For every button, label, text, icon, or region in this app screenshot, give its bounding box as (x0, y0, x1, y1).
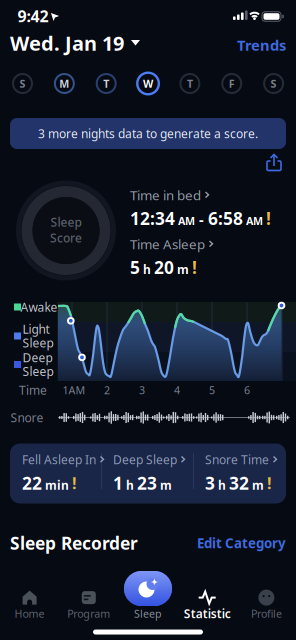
staticText: Sleep Recorder (10, 531, 138, 554)
staticText: Sleep (50, 214, 81, 230)
button[interactable]: Home (2, 574, 58, 626)
staticText: Sleep (22, 335, 53, 351)
staticText: 3 more nights data to generate a score. (38, 125, 258, 141)
button[interactable]: Edit Category (10, 534, 286, 552)
staticText: ! (72, 472, 77, 493)
staticText: Home (15, 606, 45, 621)
button[interactable]: Time in bed (130, 186, 290, 230)
staticText: Deep Sleep (113, 451, 177, 467)
staticText: ! (266, 207, 271, 230)
staticText: Sleep (134, 606, 162, 621)
button[interactable]: Deep Sleep (113, 451, 197, 494)
staticText: 3 (139, 383, 145, 397)
staticText: Time in bed (130, 186, 201, 204)
staticText: 6 (244, 383, 250, 397)
staticText: Program (67, 606, 110, 621)
button[interactable]: Trends (10, 35, 286, 55)
button[interactable]: Statistic (179, 574, 235, 626)
button[interactable]: Snore Time (205, 451, 289, 494)
button[interactable]: Wednesday (135, 70, 161, 96)
staticText: 5 (209, 383, 215, 397)
button[interactable]: Wed. Jan 19 (10, 30, 286, 56)
staticText: 2 (104, 383, 110, 397)
staticText: S (271, 76, 277, 91)
staticText: Time Asleep (130, 235, 205, 253)
staticText: S (19, 76, 25, 91)
staticText: F (229, 76, 235, 91)
button[interactable]: Monday (51, 70, 77, 96)
staticText: T (103, 76, 109, 91)
button[interactable]: Sleep (120, 574, 176, 626)
button[interactable]: Saturday (261, 70, 287, 96)
staticText: 22 min (22, 471, 69, 494)
staticText: W (143, 76, 153, 91)
button[interactable]: Tuesday (93, 70, 119, 96)
button[interactable]: Thursday (177, 70, 203, 96)
staticText: Profile (251, 606, 282, 621)
staticText: ! (192, 256, 197, 279)
staticText: Snore Time (205, 451, 269, 467)
staticText: Sleep (22, 363, 53, 379)
staticText: Score (50, 230, 82, 246)
staticText: 1AM (62, 383, 85, 397)
staticText: T (187, 76, 193, 91)
staticText: Snore (10, 409, 43, 425)
staticText: 9:42 (17, 5, 48, 27)
staticText: Statistic (184, 605, 231, 621)
button[interactable]: Friday (219, 70, 245, 96)
staticText: 4 (174, 383, 180, 397)
staticText: Fell Asleep In (22, 451, 96, 467)
staticText: Light (22, 321, 49, 337)
button[interactable]: Program (61, 574, 117, 626)
staticText: Edit Category (197, 534, 286, 552)
button[interactable]: Share (260, 154, 288, 176)
staticText: 5 h 20 m (130, 256, 189, 279)
staticText: Deep (22, 350, 52, 365)
button[interactable]: Time Asleep (130, 235, 290, 279)
staticText: 3 h 32 m (205, 471, 264, 494)
staticText: 12:34 AM - 6:58 AM (130, 207, 263, 230)
staticText: M (59, 76, 69, 91)
staticText: Awake (20, 299, 57, 315)
staticText: Trends (237, 35, 286, 55)
staticText: Time (19, 382, 47, 398)
button[interactable]: Sunday (9, 70, 35, 96)
staticText: Wed. Jan 19 (10, 30, 124, 56)
button[interactable]: Fell Asleep In (22, 451, 106, 494)
button[interactable]: Profile (238, 574, 294, 626)
staticText: ! (267, 472, 272, 493)
staticText: 1 h 23 m (113, 471, 172, 494)
button[interactable]: 3 more nights data to generate a score. (10, 118, 286, 149)
